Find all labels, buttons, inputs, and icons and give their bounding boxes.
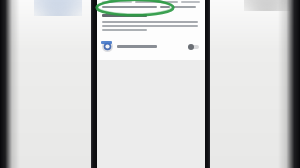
button[interactable]: Toggle Google Authenticator bbox=[188, 43, 199, 50]
button[interactable]: Toggle Google Authenticator bbox=[97, 38, 205, 55]
